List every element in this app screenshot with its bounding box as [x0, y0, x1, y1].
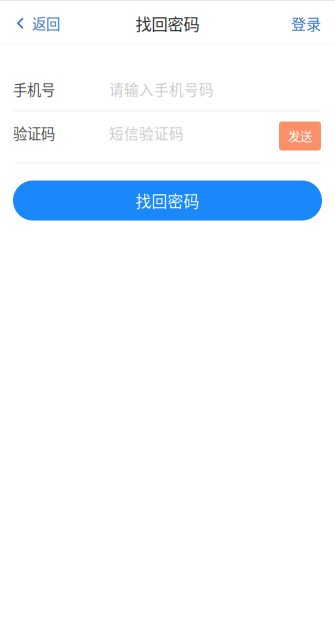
staticText: 手机号	[13, 79, 55, 99]
staticText: 短信验证码	[109, 122, 184, 143]
button[interactable]: 返回	[0, 1, 72, 43]
staticText: 验证码	[13, 123, 55, 143]
button[interactable]: 登录	[279, 1, 335, 43]
staticText: 发送	[288, 127, 312, 145]
button[interactable]: 发送	[279, 121, 321, 150]
staticText: 返回	[32, 13, 60, 34]
button[interactable]: 验证码	[0, 111, 335, 154]
staticText: 登录	[291, 12, 321, 34]
button[interactable]: 手机号	[0, 67, 335, 110]
button[interactable]: 找回密码	[13, 180, 322, 220]
staticText: 找回密码	[135, 189, 199, 212]
staticText: 找回密码	[135, 11, 199, 35]
staticText: 请输入手机号码	[109, 78, 214, 99]
